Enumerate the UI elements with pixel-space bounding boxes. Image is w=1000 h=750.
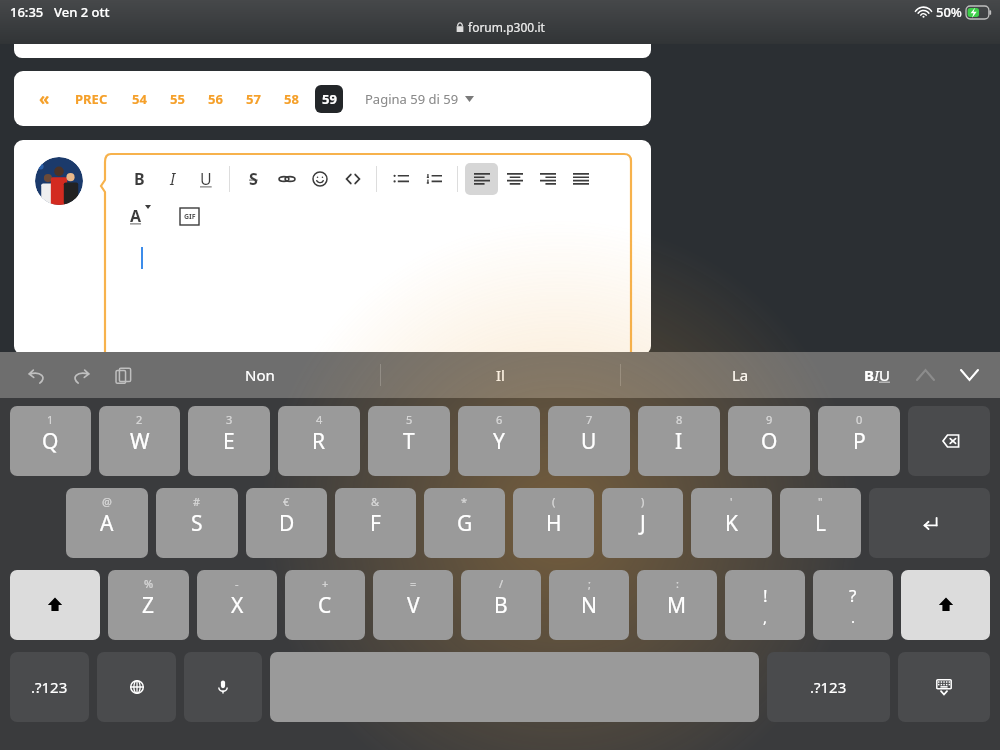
button[interactable]: W bbox=[99, 406, 180, 476]
staticText: + bbox=[322, 576, 329, 591]
button[interactable]: Codice bbox=[336, 163, 369, 195]
staticText: GIF bbox=[184, 212, 196, 222]
button[interactable]: I bbox=[638, 406, 720, 476]
button[interactable]: Link bbox=[270, 163, 303, 195]
button[interactable]: Nascondi tastiera bbox=[898, 652, 990, 722]
staticText: A bbox=[100, 509, 114, 538]
staticText: D bbox=[279, 509, 295, 538]
staticText: B bbox=[134, 168, 145, 190]
button[interactable]: 56 bbox=[205, 84, 226, 114]
button[interactable]: ! bbox=[725, 570, 805, 640]
button[interactable]: La bbox=[621, 352, 860, 398]
button[interactable]: S bbox=[156, 488, 238, 558]
button[interactable]: A bbox=[66, 488, 148, 558]
staticText: F bbox=[370, 509, 381, 538]
staticText: E bbox=[223, 427, 235, 456]
button[interactable]: ? bbox=[813, 570, 893, 640]
button[interactable]: Elenco numerato bbox=[417, 163, 450, 195]
button[interactable]: Sottolineato bbox=[189, 163, 222, 195]
button[interactable]: H bbox=[513, 488, 594, 558]
staticText: 58 bbox=[284, 90, 299, 108]
button[interactable]: R bbox=[278, 406, 360, 476]
button[interactable]: Il bbox=[381, 352, 620, 398]
staticText: .?123 bbox=[810, 677, 847, 697]
button[interactable]: Allinea a sinistra bbox=[465, 163, 498, 195]
button[interactable]: Cancella bbox=[908, 406, 990, 476]
button[interactable]: Dettatura bbox=[184, 652, 262, 722]
button[interactable]: Annulla bbox=[20, 358, 54, 392]
button[interactable]: G bbox=[424, 488, 505, 558]
staticText: 59 bbox=[322, 90, 337, 108]
button[interactable]: O bbox=[728, 406, 810, 476]
button[interactable]: D bbox=[246, 488, 327, 558]
button[interactable]: V bbox=[373, 570, 453, 640]
button[interactable]: Emoji bbox=[303, 163, 336, 195]
staticText: % bbox=[144, 576, 154, 591]
button[interactable]: Maiuscole bbox=[10, 570, 100, 640]
button[interactable]: GIF bbox=[178, 206, 201, 227]
staticText: .?123 bbox=[31, 677, 68, 697]
button[interactable]: J bbox=[602, 488, 683, 558]
button[interactable]: Grassetto bbox=[123, 163, 156, 195]
staticText: * bbox=[461, 494, 468, 509]
staticText: N bbox=[581, 591, 597, 620]
button[interactable]: Cambia tastiera bbox=[97, 652, 176, 722]
button[interactable]: Z bbox=[108, 570, 189, 640]
button[interactable]: Incolla bbox=[106, 358, 140, 392]
button[interactable]: Giustifica bbox=[564, 163, 597, 195]
staticText: 54 bbox=[132, 90, 147, 108]
button[interactable]: 59 bbox=[315, 85, 343, 113]
staticText: 1 bbox=[47, 412, 54, 427]
button[interactable]: E bbox=[188, 406, 270, 476]
button[interactable]: Corsivo bbox=[156, 163, 189, 195]
button[interactable]: 57 bbox=[243, 84, 264, 114]
staticText: 50% bbox=[936, 3, 962, 21]
button[interactable]: M bbox=[637, 570, 717, 640]
button[interactable]: 54 bbox=[129, 84, 150, 114]
staticText: G bbox=[457, 509, 473, 538]
button[interactable]: .?123 bbox=[767, 652, 890, 722]
button[interactable]: L bbox=[780, 488, 861, 558]
button[interactable]: N bbox=[549, 570, 629, 640]
button[interactable]: Su bbox=[908, 358, 942, 392]
button[interactable]: Non bbox=[140, 352, 380, 398]
button[interactable]: B bbox=[461, 570, 541, 640]
button[interactable]: K bbox=[691, 488, 772, 558]
button[interactable]: Maiuscole bbox=[901, 570, 990, 640]
button[interactable]: U bbox=[548, 406, 630, 476]
button[interactable]: PREC bbox=[71, 84, 112, 114]
button[interactable]: 58 bbox=[281, 84, 302, 114]
button[interactable]: Allinea a destra bbox=[531, 163, 564, 195]
staticText: P bbox=[853, 427, 866, 456]
button[interactable]: Centra bbox=[498, 163, 531, 195]
button[interactable]: Elenco puntato bbox=[384, 163, 417, 195]
button[interactable]: .?123 bbox=[10, 652, 89, 722]
staticText: ( bbox=[552, 494, 556, 509]
staticText: 56 bbox=[208, 90, 223, 108]
button[interactable]: 55 bbox=[167, 84, 188, 114]
button[interactable]: T bbox=[368, 406, 450, 476]
button[interactable]: Formato bbox=[858, 359, 896, 391]
staticText: J bbox=[640, 509, 646, 538]
staticText: Z bbox=[142, 591, 155, 620]
button[interactable]: Colore testo bbox=[123, 201, 158, 231]
button[interactable]: Y bbox=[458, 406, 540, 476]
staticText: : bbox=[676, 576, 679, 591]
staticText: S bbox=[249, 168, 258, 190]
button[interactable]: Ripristina bbox=[63, 358, 97, 392]
button[interactable]: Spazio bbox=[270, 652, 759, 722]
staticText: H bbox=[546, 509, 562, 538]
button[interactable]: Prima pagina bbox=[34, 81, 55, 116]
button[interactable]: P bbox=[818, 406, 900, 476]
staticText: Y bbox=[493, 427, 505, 456]
staticText: ; bbox=[588, 576, 591, 591]
button[interactable]: X bbox=[197, 570, 277, 640]
button[interactable]: F bbox=[335, 488, 416, 558]
button[interactable]: Invio bbox=[869, 488, 990, 558]
staticText: B bbox=[494, 591, 508, 620]
button[interactable]: Pagina 59 di 59 bbox=[365, 84, 474, 114]
button[interactable]: Giù bbox=[952, 358, 986, 392]
button[interactable]: C bbox=[285, 570, 365, 640]
button[interactable]: Barrato bbox=[237, 163, 270, 195]
button[interactable]: Q bbox=[10, 406, 91, 476]
